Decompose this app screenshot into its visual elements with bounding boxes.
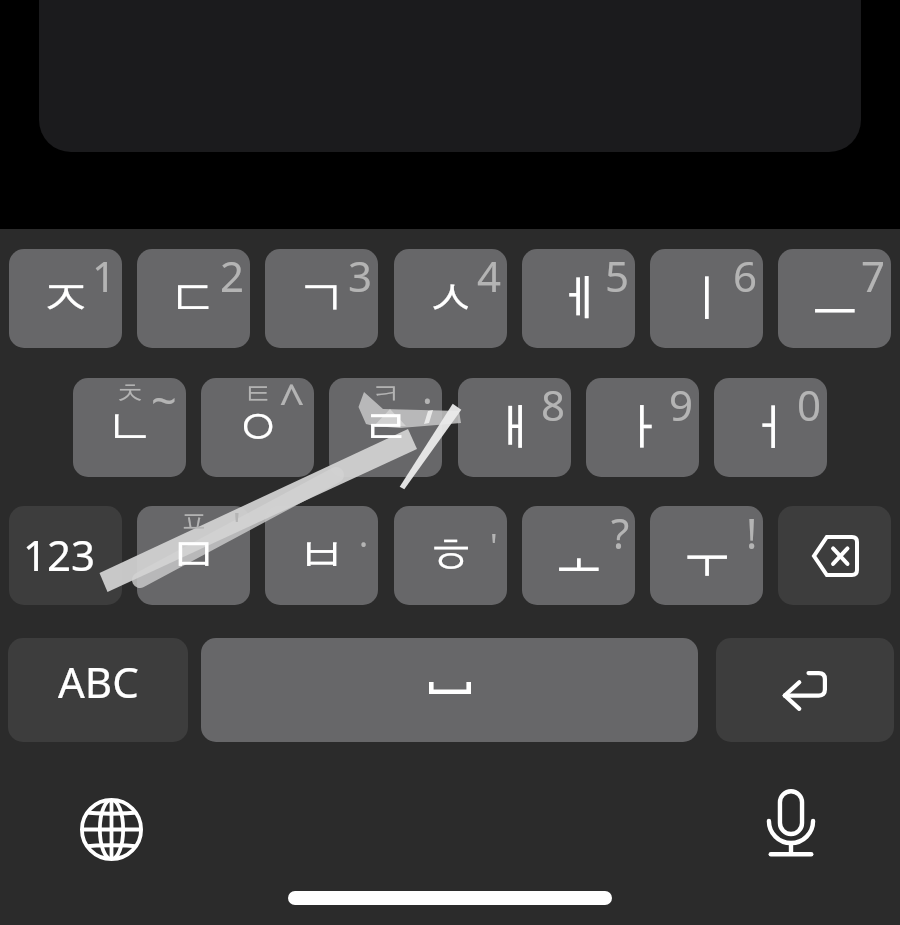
staticText: ㅁ [169, 524, 219, 587]
button[interactable]: ㅡ [778, 249, 891, 348]
staticText: ~ [151, 369, 177, 430]
staticText: ㄴ [105, 396, 155, 459]
button[interactable]: ㅂ [265, 506, 378, 605]
staticText: ㅇ [233, 396, 283, 459]
staticText: ㅏ [618, 396, 668, 459]
staticText: ㅂ [297, 524, 347, 587]
staticText: 9 [669, 376, 694, 433]
staticText: ㅜ [682, 524, 732, 587]
button[interactable]: ㅅ [394, 249, 507, 348]
staticText: ㅡ [810, 267, 860, 330]
button[interactable]: ㅎ [394, 506, 507, 605]
staticText: 2 [220, 247, 245, 304]
button[interactable]: ㅓ [714, 378, 827, 477]
staticText: 5 [605, 247, 630, 304]
staticText: 0 [797, 376, 822, 433]
button[interactable]: ㅣ [650, 249, 763, 348]
staticText: ㅣ [682, 267, 732, 330]
button[interactable]: ㅏ [586, 378, 699, 477]
staticText: 6 [733, 247, 758, 304]
button[interactable]: ㄴ [73, 378, 186, 477]
button[interactable]: 123 [9, 506, 122, 605]
staticText: ㅎ [426, 524, 476, 587]
staticText: ? [611, 504, 630, 561]
staticText: ㅔ [554, 267, 604, 330]
staticText: · [359, 521, 369, 567]
staticText: ㅅ [426, 267, 476, 330]
staticText: ㅋ [371, 375, 401, 413]
button[interactable]: Change keyboard language [72, 790, 150, 868]
staticText: ㅗ [554, 524, 604, 587]
staticText: ' [233, 502, 241, 548]
staticText: · [422, 372, 433, 426]
button[interactable]: ㅜ [650, 506, 763, 605]
button[interactable]: ㅐ [458, 378, 571, 477]
staticText: ' [490, 523, 498, 569]
staticText: ㅈ [41, 267, 91, 330]
button[interactable]: Space [201, 638, 698, 742]
button[interactable]: Backspace [778, 506, 891, 605]
button[interactable]: ㅈ [9, 249, 122, 348]
button[interactable]: ㄷ [137, 249, 250, 348]
staticText: ㄷ [169, 267, 219, 330]
staticText: ! [746, 504, 758, 561]
button[interactable]: ㅗ [522, 506, 635, 605]
button[interactable]: Voice input [752, 784, 830, 862]
staticText: 4 [477, 247, 502, 304]
staticText: 7 [861, 247, 886, 304]
staticText: ㅓ [746, 396, 796, 459]
staticText: ㄱ [297, 267, 347, 330]
button[interactable]: Enter [716, 638, 894, 742]
staticText: 1 [92, 247, 117, 304]
staticText: 3 [348, 247, 373, 304]
staticText: ㅊ [115, 375, 145, 413]
staticText: ABC [58, 653, 139, 710]
staticText: ^ [279, 369, 305, 430]
staticText: ㅍ [179, 503, 209, 541]
staticText: ㄹ [361, 396, 411, 459]
button[interactable]: ABC [8, 638, 188, 742]
staticText: 8 [541, 376, 566, 433]
button[interactable]: ㅇ [201, 378, 314, 477]
button[interactable]: ㄹ [329, 378, 442, 477]
button[interactable]: ㅁ [137, 506, 250, 605]
button[interactable]: ㅔ [522, 249, 635, 348]
staticText: 123 [23, 526, 96, 583]
staticText: ㅐ [490, 396, 540, 459]
staticText: ㅌ [243, 375, 273, 413]
button[interactable]: ㄱ [265, 249, 378, 348]
